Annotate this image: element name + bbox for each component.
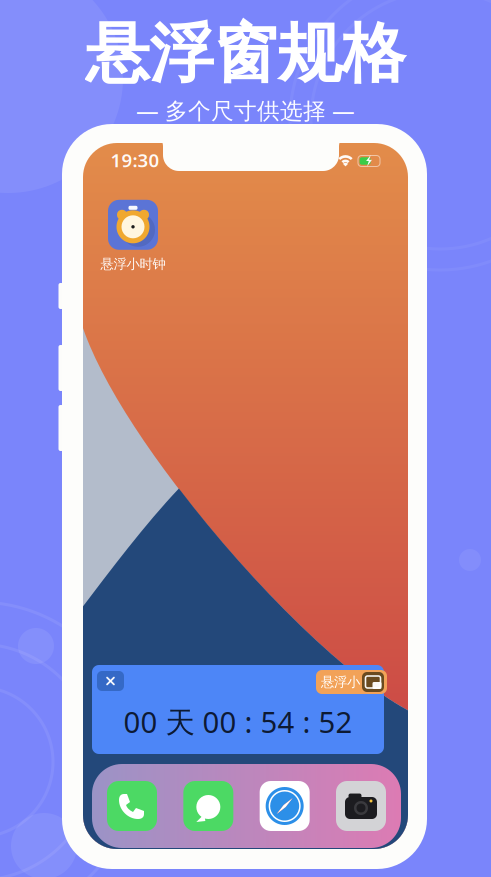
staticText: 悬浮小 — [321, 674, 360, 690]
button[interactable]: 悬浮小时钟 — [108, 200, 158, 250]
staticText: 19:30 — [110, 148, 159, 172]
staticText: 悬浮窗规格 — [85, 15, 405, 93]
button[interactable]: Messages — [183, 781, 233, 831]
staticText: 00 天 00 : 54 : 52 — [123, 702, 352, 741]
button[interactable]: Phone — [107, 781, 157, 831]
button[interactable]: Safari — [260, 781, 310, 831]
button[interactable]: Picture in picture — [316, 670, 387, 694]
button[interactable]: Camera — [336, 781, 386, 831]
staticText: — 多个尺寸供选择 — — [136, 95, 355, 125]
button[interactable]: Close floating window — [97, 671, 124, 691]
staticText: 悬浮小时钟 — [100, 256, 165, 272]
